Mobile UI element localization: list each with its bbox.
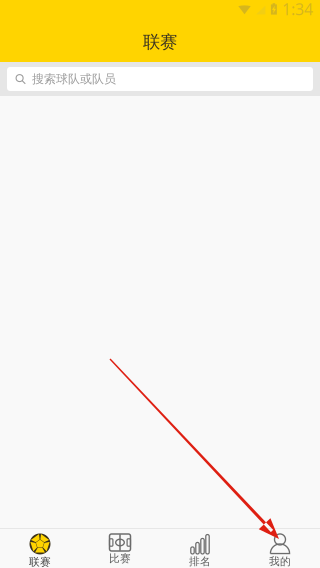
button[interactable]: 搜索球队或队员 (7, 67, 313, 91)
staticText: 比赛 (109, 552, 131, 565)
staticText: 联赛 (29, 555, 51, 568)
staticText: 我的 (269, 555, 291, 568)
button[interactable]: 排名 (160, 529, 240, 568)
staticText: 搜索球队或队员 (32, 72, 116, 86)
button[interactable]: 我的 (240, 529, 320, 568)
button[interactable]: 比赛 (80, 529, 160, 568)
staticText: 1:34 (282, 0, 313, 20)
staticText: 联赛 (143, 31, 177, 53)
button[interactable]: 联赛 (0, 529, 80, 568)
staticText: 排名 (189, 555, 211, 568)
